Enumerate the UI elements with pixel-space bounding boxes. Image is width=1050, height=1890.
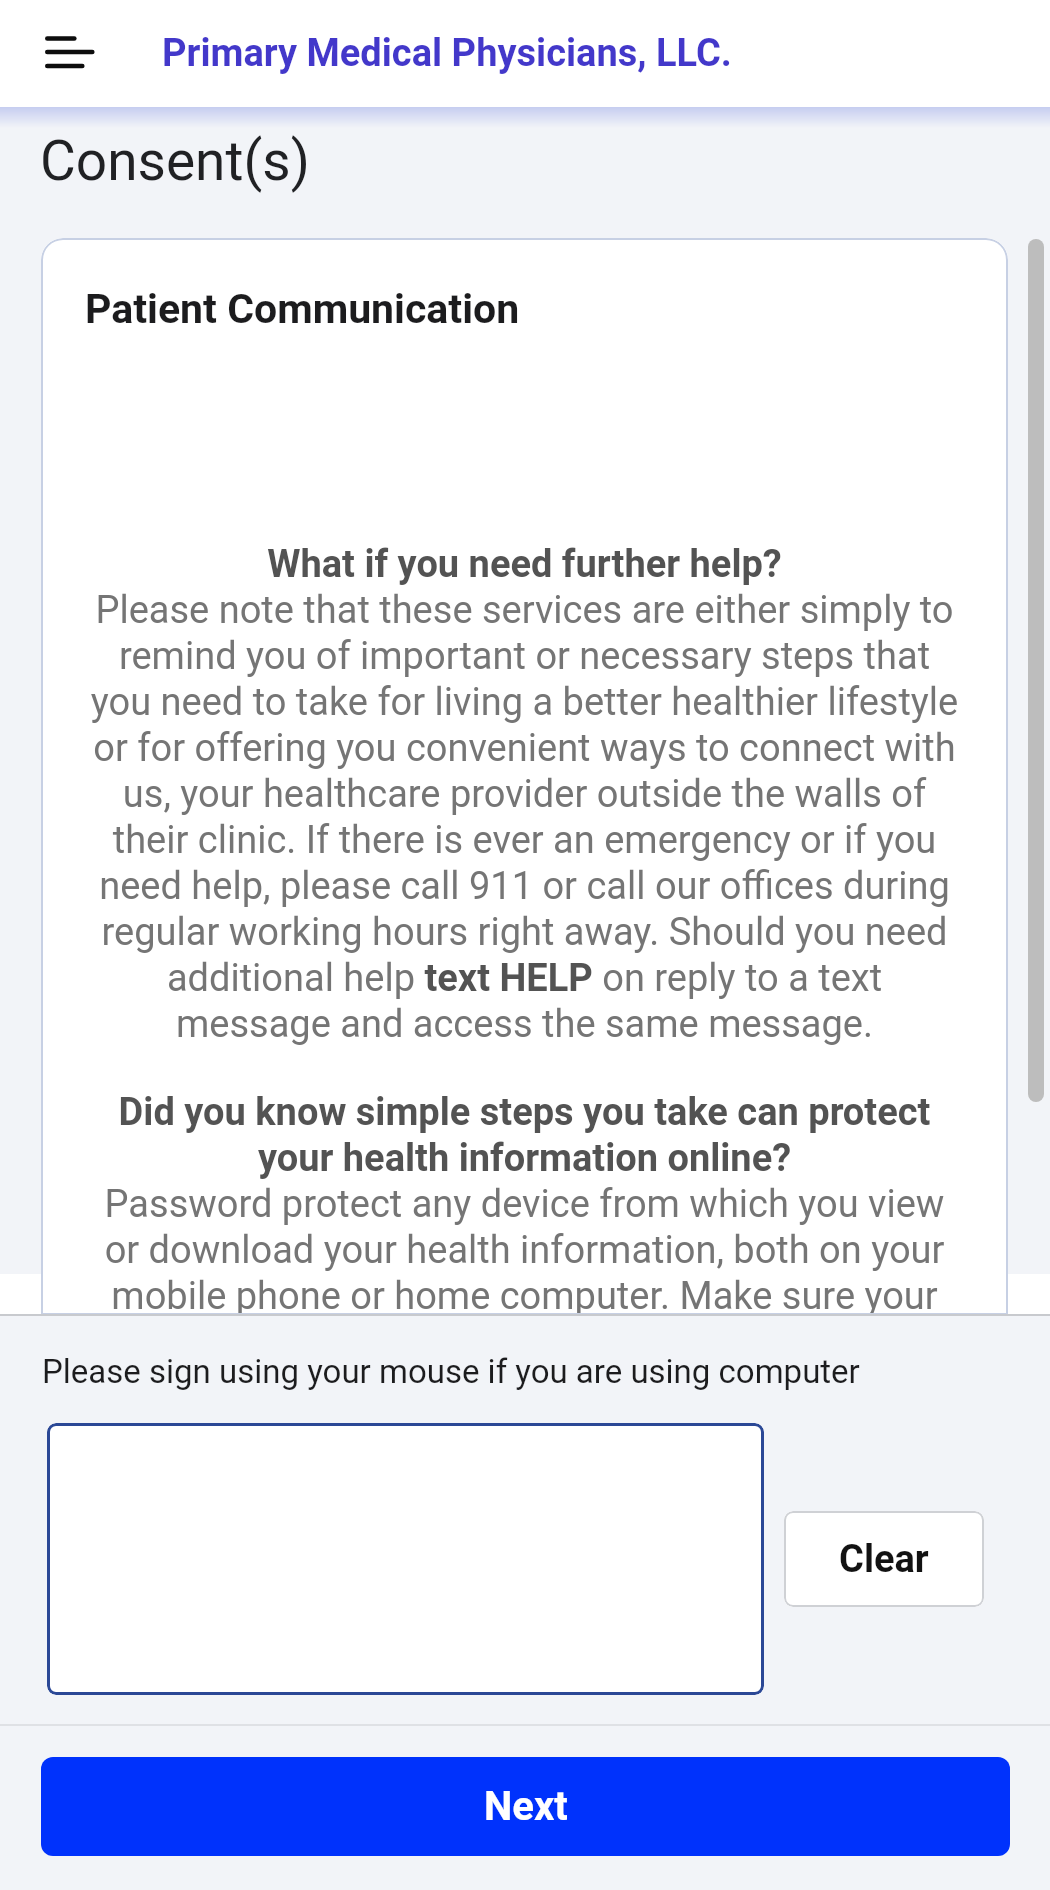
button[interactable]: Signature pad xyxy=(47,1423,764,1695)
staticText: Did you know simple steps you take can p… xyxy=(89,1090,960,1315)
staticText: Primary Medical Physicians, LLC. xyxy=(162,31,732,76)
button[interactable]: Next xyxy=(41,1757,1010,1856)
staticText: Please sign using your mouse if you are … xyxy=(42,1352,860,1391)
staticText: What if you need further help? Please no… xyxy=(89,542,960,1046)
staticText: Clear xyxy=(839,1537,929,1582)
button[interactable]: Clear xyxy=(784,1511,984,1607)
staticText: Consent(s) xyxy=(40,129,310,193)
staticText: Next xyxy=(484,1783,568,1830)
button[interactable]: Open navigation menu xyxy=(26,6,118,98)
staticText: Patient Communication xyxy=(85,285,520,333)
